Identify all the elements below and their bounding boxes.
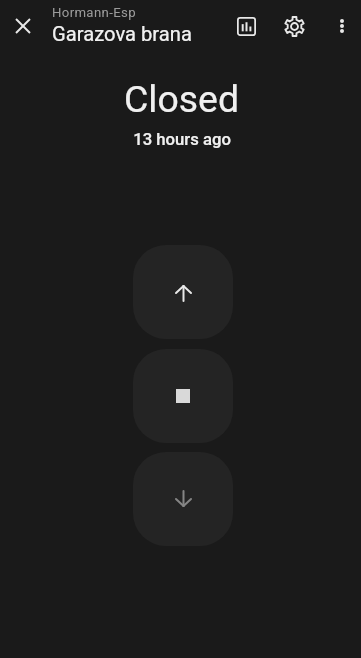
button[interactable]: More options <box>320 4 361 48</box>
staticText: Closed <box>124 77 239 121</box>
button[interactable]: Close <box>0 3 46 49</box>
button[interactable]: Settings <box>272 4 316 48</box>
staticText: Garazova brana <box>52 22 192 46</box>
button[interactable]: Close door <box>133 452 233 546</box>
staticText: 13 hours ago <box>133 130 231 150</box>
button[interactable]: Open door <box>133 245 233 339</box>
staticText: Hormann-Esp <box>52 5 136 20</box>
button[interactable]: Statistics <box>224 4 268 48</box>
button[interactable]: Stop door <box>133 349 233 443</box>
